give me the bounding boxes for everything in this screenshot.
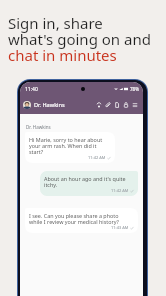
staticText: 78% bbox=[130, 86, 139, 92]
button[interactable]: Call bbox=[96, 102, 102, 108]
button[interactable]: I see. Can you please share a photo whil… bbox=[25, 208, 138, 233]
staticText: Dr. Hawkins bbox=[26, 124, 51, 130]
staticText: Hi Marie, sorry to hear about your arm r… bbox=[29, 136, 103, 155]
staticText: I see. Can you please share a photo whil… bbox=[29, 212, 119, 225]
button[interactable]: Profile bbox=[23, 101, 31, 109]
staticText: 11:42 AM bbox=[88, 155, 106, 160]
staticText: Sign in, share what's going on and chat … bbox=[8, 13, 151, 65]
staticText: 11:40 bbox=[25, 86, 38, 93]
button[interactable]: Documents bbox=[114, 102, 120, 108]
button[interactable]: Security bbox=[123, 102, 129, 108]
button[interactable]: Hi Marie, sorry to hear about your arm r… bbox=[25, 132, 115, 163]
staticText: About an hour ago and it's quite itchy. bbox=[44, 175, 126, 188]
button[interactable]: About an hour ago and it's quite itchy. bbox=[40, 171, 138, 196]
button[interactable]: Attach file bbox=[105, 102, 111, 108]
staticText: 11:42 AM bbox=[111, 188, 129, 193]
button[interactable]: Menu bbox=[132, 102, 138, 108]
staticText: Dr. Hawkins bbox=[34, 101, 65, 109]
staticText: 11:43 AM bbox=[111, 225, 129, 230]
